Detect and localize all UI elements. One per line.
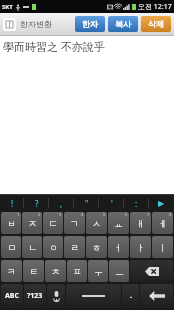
- button[interactable]: ㅊ: [45, 260, 66, 282]
- button[interactable]: Enter: [140, 284, 173, 308]
- staticText: ㅐ: [136, 218, 145, 229]
- button[interactable]: ㅋ: [1, 260, 22, 282]
- button[interactable]: ㅔ: [152, 212, 173, 234]
- button[interactable]: Space: [66, 284, 121, 308]
- staticText: :: [135, 198, 138, 209]
- staticText: ㅣ: [158, 242, 167, 253]
- button[interactable]: ㄹ: [64, 236, 85, 258]
- staticText: ㅏ: [136, 242, 145, 253]
- staticText: ㅁ: [7, 242, 16, 253]
- button[interactable]: 복사: [108, 16, 138, 32]
- staticText: !: [11, 198, 14, 209]
- staticText: ㅅ: [92, 218, 101, 229]
- staticText: ㄷ: [49, 218, 58, 229]
- staticText: .: [130, 291, 132, 301]
- staticText: 1: [17, 212, 20, 217]
- staticText: ?: [35, 198, 39, 209]
- button[interactable]: ㅡ: [109, 260, 129, 282]
- staticText: 學而時習之 不亦說乎: [3, 39, 105, 54]
- staticText: 4: [81, 212, 84, 217]
- staticText: ㅌ: [29, 266, 38, 277]
- staticText: ▶: [158, 199, 165, 208]
- button[interactable]: ㄱ: [64, 212, 85, 234]
- staticText: ㅔ: [158, 218, 167, 229]
- button[interactable]: ㅂ: [1, 212, 21, 234]
- staticText: 5: [103, 212, 106, 217]
- button[interactable]: ㅇ: [43, 236, 63, 258]
- button[interactable]: ?123: [24, 284, 46, 308]
- staticText: ㅊ: [51, 266, 60, 277]
- button[interactable]: Voice input: [47, 284, 65, 308]
- staticText: ㅍ: [73, 266, 82, 277]
- button[interactable]: ,: [49, 195, 74, 211]
- button[interactable]: 한자: [75, 16, 105, 32]
- button[interactable]: ㅛ: [108, 212, 129, 234]
- button[interactable]: ▶: [149, 195, 174, 211]
- staticText: ㅂ: [7, 218, 16, 229]
- button[interactable]: Hanja converter: [3, 18, 16, 31]
- button[interactable]: ㅎ: [86, 236, 107, 258]
- staticText: ': [111, 198, 113, 209]
- staticText: 7: [147, 212, 150, 217]
- staticText: ㅓ: [114, 242, 123, 253]
- staticText: ㄹ: [70, 242, 79, 253]
- button[interactable]: ㅓ: [108, 236, 129, 258]
- button[interactable]: ㅁ: [1, 236, 21, 258]
- button[interactable]: ㄷ: [43, 212, 63, 234]
- staticText: ㄱ: [70, 218, 79, 229]
- button[interactable]: ㅈ: [22, 212, 42, 234]
- staticText: ㅡ: [115, 266, 124, 277]
- staticText: 8: [169, 212, 172, 217]
- staticText: 6: [125, 212, 128, 217]
- button[interactable]: ': [99, 195, 124, 211]
- button[interactable]: ㅜ: [88, 260, 108, 282]
- button[interactable]: ㅐ: [130, 212, 151, 234]
- staticText: ㅎ: [92, 242, 101, 253]
- button[interactable]: ㅍ: [67, 260, 87, 282]
- staticText: 한자변환: [20, 19, 52, 29]
- staticText: ": [85, 198, 89, 209]
- button[interactable]: Backspace: [130, 260, 173, 282]
- button[interactable]: ㅅ: [86, 212, 107, 234]
- staticText: ,: [60, 198, 63, 209]
- button[interactable]: :: [124, 195, 149, 211]
- button[interactable]: ㄴ: [22, 236, 42, 258]
- staticText: ?123: [27, 291, 43, 301]
- staticText: 2: [38, 212, 41, 217]
- staticText: SKT: [2, 3, 13, 11]
- staticText: 삭제: [148, 19, 164, 29]
- staticText: ㅜ: [94, 266, 103, 277]
- button[interactable]: ㅣ: [152, 236, 173, 258]
- staticText: 3: [59, 212, 62, 217]
- staticText: 복사: [115, 19, 131, 29]
- staticText: ㄴ: [28, 242, 37, 253]
- button[interactable]: ㅌ: [23, 260, 44, 282]
- button[interactable]: !: [0, 195, 24, 211]
- staticText: ㅋ: [7, 266, 16, 277]
- button[interactable]: ?: [24, 195, 49, 211]
- staticText: ABC: [5, 291, 19, 301]
- button[interactable]: .: [122, 284, 139, 308]
- staticText: ㅛ: [114, 218, 123, 229]
- staticText: 오전 12:17: [138, 2, 172, 12]
- button[interactable]: ": [74, 195, 99, 211]
- staticText: ㅈ: [28, 218, 37, 229]
- button[interactable]: 삭제: [141, 16, 171, 32]
- staticText: 한자: [82, 19, 98, 29]
- button[interactable]: ㅏ: [130, 236, 151, 258]
- button[interactable]: ABC: [1, 284, 23, 308]
- staticText: ㅇ: [49, 242, 58, 253]
